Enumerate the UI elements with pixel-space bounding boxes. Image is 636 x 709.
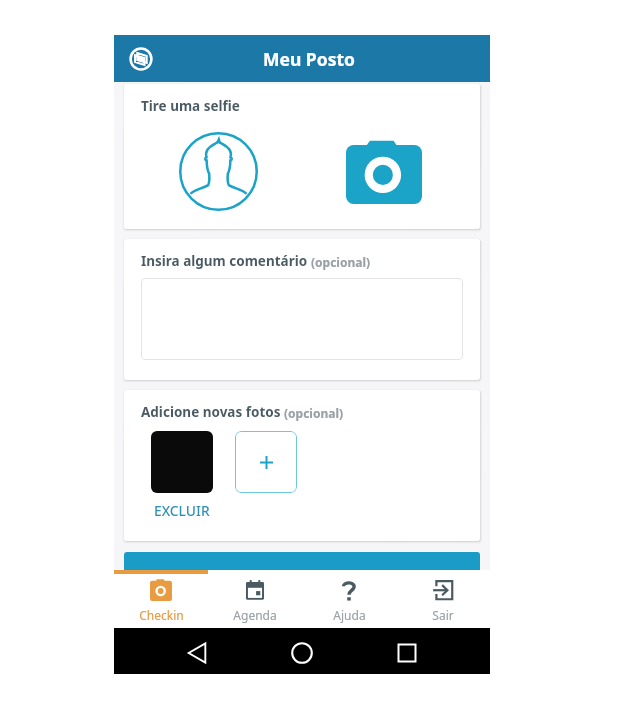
- button[interactable]: Recents: [390, 636, 424, 670]
- staticText: (opcional): [284, 405, 344, 421]
- button[interactable]: Agenda: [208, 574, 302, 628]
- button[interactable]: [141, 278, 463, 360]
- staticText: Checkin: [139, 607, 184, 623]
- button[interactable]: Ajuda: [302, 574, 396, 628]
- staticText: Insira algum comentário: [141, 252, 308, 270]
- button[interactable]: Sair: [396, 574, 490, 628]
- button[interactable]: Back: [180, 636, 214, 670]
- button[interactable]: Menu: [128, 46, 154, 72]
- button[interactable]: [179, 132, 258, 211]
- staticText: Tire uma selfie: [141, 97, 240, 115]
- staticText: Adicione novas fotos: [141, 403, 281, 421]
- staticText: Meu Posto: [263, 47, 355, 71]
- button[interactable]: [151, 431, 213, 493]
- button[interactable]: EXCLUIR: [154, 501, 210, 520]
- button[interactable]: [124, 552, 480, 592]
- staticText: Agenda: [233, 607, 277, 623]
- staticText: (opcional): [311, 254, 371, 270]
- staticText: Ajuda: [333, 607, 366, 623]
- staticText: Sair: [432, 607, 454, 623]
- button[interactable]: Checkin: [114, 574, 208, 628]
- button[interactable]: Home: [285, 636, 319, 670]
- button[interactable]: Adicionar foto: [235, 431, 297, 493]
- button[interactable]: Tirar foto: [346, 140, 422, 204]
